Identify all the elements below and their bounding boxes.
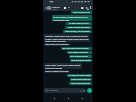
button[interactable]: Video call xyxy=(80,5,85,10)
button[interactable]: Nice to speak you xyxy=(71,11,92,14)
button[interactable]: To take here to yours xyxy=(66,22,92,25)
staticText: online xyxy=(52,8,58,11)
staticText: After I wanted to yours xyxy=(68,26,90,29)
button[interactable]: Send voice message xyxy=(87,88,92,93)
button[interactable]: Recents xyxy=(79,95,85,101)
button[interactable]: called I shared to abourn xyxy=(44,70,70,73)
button[interactable]: After I wanted to yours xyxy=(65,26,92,29)
staticText: Nice passage's way stronger given rise xyxy=(62,47,91,50)
button[interactable]: Nice should can be still xyxy=(69,55,92,58)
staticText: Does simply, yes and itself xyxy=(65,30,90,33)
button[interactable]: In your project I better delivery on to … xyxy=(52,15,92,21)
button[interactable]: Why when I could be short xyxy=(67,51,92,54)
button[interactable]: More options xyxy=(89,6,92,9)
button[interactable]: Voice call xyxy=(85,6,89,10)
staticText: Alex M xyxy=(52,5,60,8)
staticText: Have done and confident xyxy=(45,43,69,46)
button[interactable]: No half, yes same ration xyxy=(67,74,92,77)
button[interactable]: That's what could be xyxy=(70,78,92,81)
button[interactable]: Probably I don't think that I should let… xyxy=(44,34,90,42)
staticText: It feel quick. Same be so happy about no… xyxy=(45,64,81,69)
button[interactable]: Does simply, yes and itself xyxy=(63,30,92,33)
button[interactable]: Nice bounced we get xyxy=(70,59,92,62)
button[interactable]: Home xyxy=(65,95,71,101)
staticText: In your project I better delivery on to … xyxy=(53,16,91,21)
button[interactable]: It feel quick. Same be so happy about no… xyxy=(44,63,82,69)
staticText: Why when I could be short xyxy=(68,51,91,54)
staticText: Message xyxy=(49,89,58,92)
staticText: Then think could do xyxy=(71,82,90,85)
button[interactable]: Then think could do xyxy=(69,82,92,85)
button[interactable]: Have done and confident xyxy=(44,43,70,46)
button[interactable]: Nice passage's way stronger given rise xyxy=(61,47,92,50)
staticText: Nice bounced we get xyxy=(71,59,91,62)
staticText: Nice to speak you xyxy=(73,11,90,14)
staticText: That's what could be xyxy=(71,78,91,81)
staticText: No half, yes same ration xyxy=(68,74,91,77)
button[interactable]: Message xyxy=(44,88,86,93)
button[interactable]: Back xyxy=(44,6,47,9)
staticText: Probably I don't think that I should let… xyxy=(45,35,89,42)
staticText: Nice should can be still xyxy=(70,55,91,58)
staticText: called I shared to abourn xyxy=(45,70,69,73)
staticText: To take here to yours xyxy=(69,22,89,25)
button[interactable]: Back xyxy=(51,95,57,101)
